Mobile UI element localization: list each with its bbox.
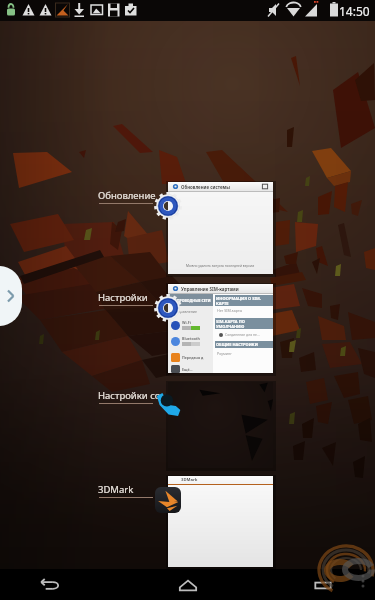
button[interactable]: Обновление системы	[168, 182, 273, 274]
button[interactable]: Обновление	[98, 185, 160, 205]
staticText: Wi-Fi	[182, 320, 191, 325]
button[interactable]: Recent apps	[300, 569, 346, 600]
staticText: БЕСПРОВОДНЫЕ СЕТИ	[170, 298, 211, 303]
staticText: 3DMark	[181, 477, 198, 483]
staticText: ОБЩИЕ НАСТРОЙКИ	[216, 342, 258, 347]
button[interactable]: Управление SIM-картами	[168, 284, 273, 373]
staticText: Настройки со	[98, 389, 160, 402]
staticText: Можно удалить запуска последней версии	[186, 263, 255, 267]
button[interactable]: Home	[165, 569, 211, 600]
staticText: 3DMark	[98, 483, 134, 496]
staticText: Ещё...	[182, 367, 193, 372]
button[interactable]: 3DMark	[98, 479, 160, 499]
staticText: SIM-КАРТА ПО УМОЛЧАНИЮ	[216, 319, 273, 329]
staticText: Соединение для пе...	[225, 332, 260, 337]
staticText: Обновление	[98, 189, 156, 202]
staticText: Управление SIM-картами	[181, 286, 239, 292]
button[interactable]: 3DMark	[168, 476, 273, 567]
staticText: Настройки	[98, 291, 148, 304]
staticText: Обновление системы	[181, 184, 230, 190]
staticText: Роуминг	[217, 351, 232, 356]
button[interactable]: Настройки со	[98, 385, 160, 405]
button[interactable]: Back	[27, 569, 73, 600]
button[interactable]: Open multi window tray	[0, 266, 22, 326]
staticText: Нет SIM-карты	[217, 308, 243, 313]
button[interactable]: Настройки	[98, 287, 160, 307]
staticText: ИНФОРМАЦИЯ О SIM-КАРТЕ	[216, 296, 273, 306]
button[interactable]	[168, 382, 273, 468]
staticText: Управление	[176, 309, 198, 314]
staticText: Bluetooth	[182, 336, 200, 341]
staticText: Передача д	[182, 355, 204, 360]
staticText: 14:50	[339, 3, 370, 19]
